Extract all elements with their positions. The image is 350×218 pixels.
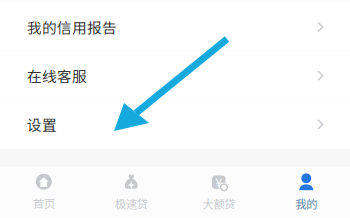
button[interactable]: ¥ [175,166,262,218]
staticText: 我的信用报告 [27,16,117,38]
staticText: 我的 [295,195,317,212]
button[interactable]: 在线客服 [0,52,350,100]
button[interactable]: 我的 [262,166,350,218]
staticText: 大额贷 [202,195,235,212]
button[interactable]: 首页 [0,166,87,218]
staticText: 极速贷 [115,195,148,212]
button[interactable]: 极速贷 [87,166,175,218]
staticText: 首页 [33,195,55,211]
staticText: ¥ [215,173,222,191]
button[interactable]: 我的信用报告 [0,3,350,51]
staticText: 在线客服 [27,65,87,86]
staticText: 设置 [27,114,57,135]
button[interactable]: 设置 [0,100,350,148]
